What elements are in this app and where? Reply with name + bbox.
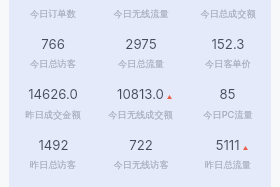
button[interactable] [184, 101, 271, 151]
button[interactable] [97, 151, 184, 187]
button[interactable] [9, 151, 97, 187]
staticText: 昨日总流量 [205, 159, 251, 171]
staticText: 766 [41, 36, 65, 52]
staticText: 今日客单价 [205, 58, 251, 70]
staticText: 152.3 [211, 36, 245, 52]
button[interactable] [9, 50, 97, 100]
button[interactable] [9, 101, 97, 151]
staticText: 722 [129, 137, 153, 153]
button[interactable] [184, 50, 271, 100]
button[interactable] [9, 0, 97, 50]
staticText: 昨日总访客 [30, 159, 76, 171]
staticText: 1492 [38, 137, 69, 153]
button[interactable] [184, 151, 271, 187]
staticText: 今日无线流量 [113, 8, 169, 20]
staticText: 今日订单数 [30, 8, 76, 20]
staticText: 昨日成交金额 [25, 109, 81, 121]
staticText: 5111 [215, 137, 240, 153]
staticText: 今日总成交额 [200, 8, 256, 20]
staticText: 10813.0 [117, 86, 164, 102]
staticText: 今日总流量 [118, 58, 164, 70]
staticText: 今日无线成交额 [108, 109, 173, 121]
staticText: 85 [219, 86, 236, 102]
staticText: 今日无线访客 [113, 159, 169, 171]
staticText: 今日总访客 [30, 58, 76, 70]
staticText: 14626.0 [28, 86, 78, 102]
button[interactable] [97, 50, 184, 100]
staticText: 今日PC流量 [203, 109, 253, 121]
button[interactable] [97, 0, 184, 50]
button[interactable] [184, 0, 271, 50]
staticText: 2975 [125, 36, 157, 52]
button[interactable] [97, 101, 184, 151]
